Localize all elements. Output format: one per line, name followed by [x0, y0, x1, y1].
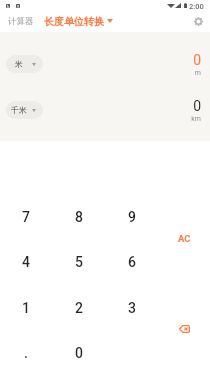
button[interactable]: 千米 [6, 101, 43, 119]
staticText: 千米 [7, 105, 31, 115]
staticText: 2:00 [189, 2, 204, 11]
button[interactable]: 8 [53, 195, 105, 239]
button[interactable]: 3 [106, 286, 158, 330]
staticText: 米 [7, 59, 31, 69]
button[interactable]: 2 [53, 286, 105, 330]
staticText: 6 [128, 254, 136, 270]
button[interactable]: 米 [6, 55, 43, 73]
button[interactable]: . [0, 331, 52, 375]
button[interactable]: 长度单位转换 [41, 12, 116, 30]
staticText: 3 [128, 300, 136, 316]
button[interactable]: 0 [53, 331, 105, 375]
button[interactable]: 1 [0, 286, 52, 330]
staticText: 4 [22, 254, 30, 270]
staticText: 7 [22, 209, 30, 225]
staticText: km [0, 115, 201, 123]
button[interactable]: 6 [106, 240, 158, 284]
staticText: 1 [22, 300, 30, 316]
staticText: 9 [128, 209, 136, 225]
staticText: AC [178, 233, 191, 244]
staticText: 0 [0, 98, 201, 114]
staticText: 8 [75, 209, 83, 225]
button[interactable]: Backspace [158, 306, 210, 351]
staticText: m [0, 69, 201, 77]
staticText: 长度单位转换 [44, 15, 104, 28]
staticText: 计算器 [8, 16, 34, 27]
button[interactable]: 9 [106, 195, 158, 239]
staticText: 0 [75, 345, 83, 361]
button[interactable]: 7 [0, 195, 52, 239]
staticText: . [24, 345, 28, 361]
button[interactable]: 5 [53, 240, 105, 284]
button[interactable]: AC [158, 216, 210, 261]
staticText: 0 [0, 52, 201, 68]
staticText: 2 [75, 300, 83, 316]
button[interactable]: Settings [190, 13, 207, 30]
button[interactable]: 4 [0, 240, 52, 284]
staticText: 5 [75, 254, 83, 270]
button[interactable]: 计算器 [4, 12, 38, 30]
